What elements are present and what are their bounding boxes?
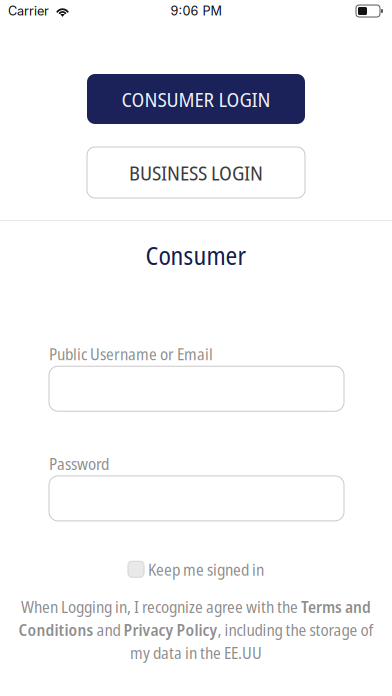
staticText: Carrier bbox=[8, 3, 49, 19]
staticText: Password bbox=[49, 452, 109, 475]
staticText: Consumer bbox=[145, 238, 246, 272]
button[interactable]: BUSINESS LOGIN bbox=[87, 147, 305, 198]
staticText: Keep me signed in bbox=[148, 558, 264, 581]
staticText: BUSINESS LOGIN bbox=[129, 158, 263, 186]
button[interactable]: Keep me signed in bbox=[128, 558, 264, 581]
staticText: my data in the EE.UU bbox=[130, 641, 262, 664]
staticText: 9:06 PM bbox=[170, 3, 221, 19]
staticText: When Logging in, I recognize agree with … bbox=[21, 595, 371, 618]
staticText: Public Username or Email bbox=[49, 342, 213, 365]
staticText: Conditions and Privacy Policy, including… bbox=[18, 618, 373, 641]
button[interactable]: CONSUMER LOGIN bbox=[87, 74, 305, 124]
staticText: CONSUMER LOGIN bbox=[121, 85, 270, 113]
